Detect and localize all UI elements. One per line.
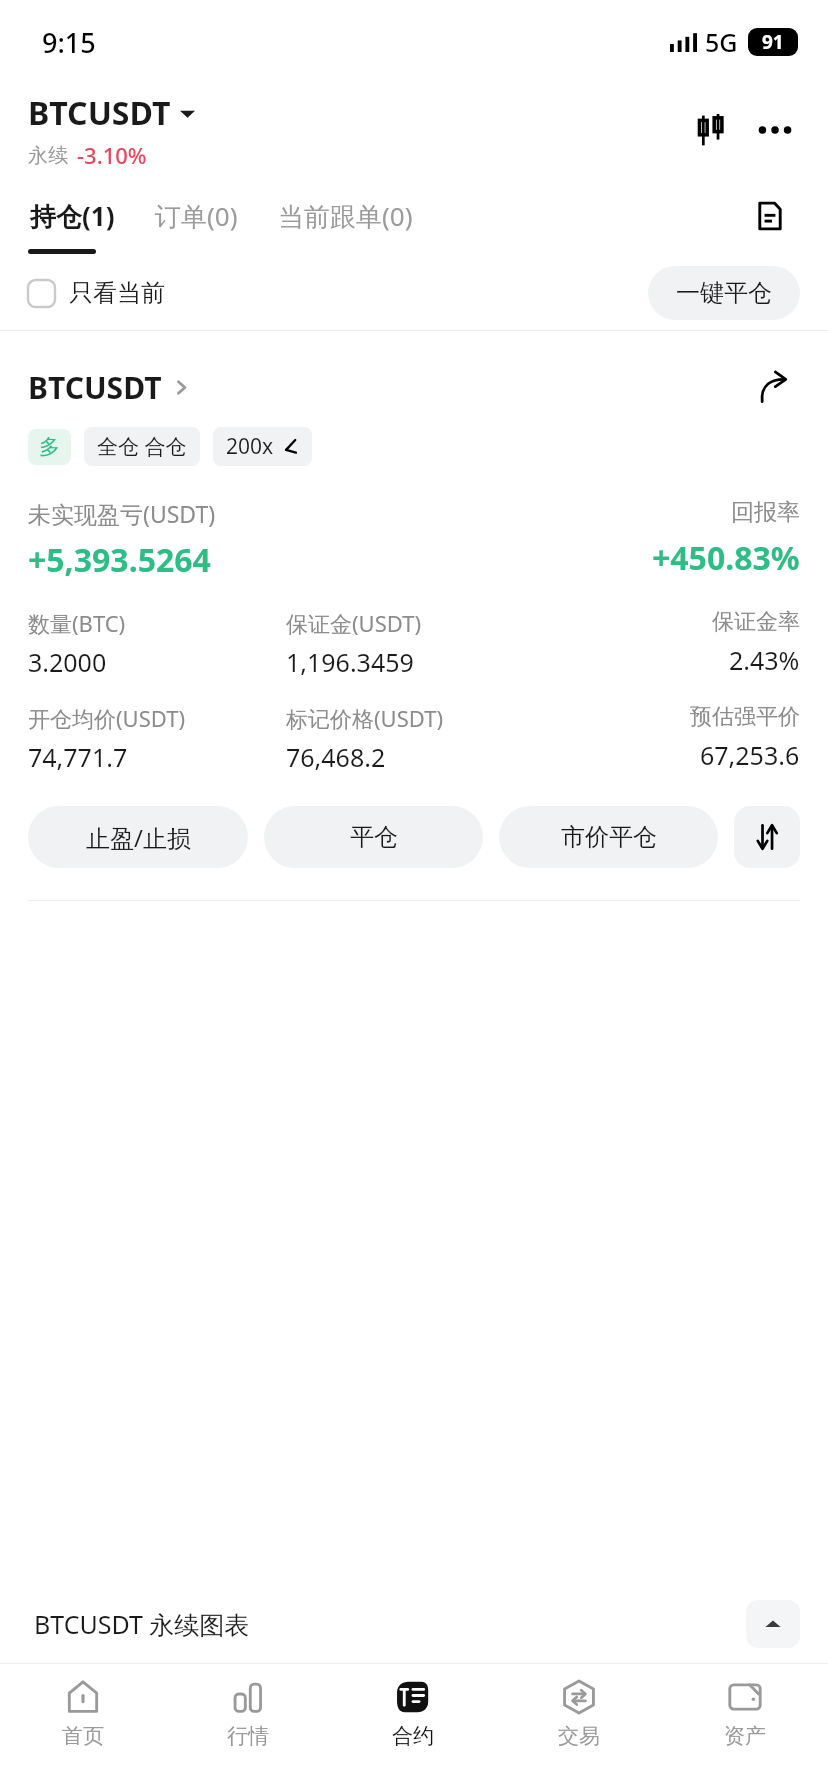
button[interactable]: More options xyxy=(746,101,804,159)
staticText: 预估强平价 xyxy=(690,703,800,731)
button[interactable]: 订单(0) xyxy=(153,190,240,242)
button[interactable]: 一键平仓 xyxy=(648,266,800,320)
staticText: 91 xyxy=(762,29,784,55)
button[interactable]: Reverse position xyxy=(734,806,800,868)
staticText: 回报率 xyxy=(731,498,800,527)
button[interactable]: 止盈/止损 xyxy=(28,806,248,868)
staticText: BTCUSDT xyxy=(28,367,162,408)
button[interactable]: 市价平仓 xyxy=(499,806,718,868)
staticText: 市价平仓 xyxy=(561,822,657,852)
staticText: +450.83% xyxy=(652,536,800,580)
button[interactable]: 只看当前 xyxy=(28,270,165,316)
staticText: 9:15 xyxy=(42,24,96,61)
button[interactable]: Share position xyxy=(748,361,800,413)
staticText: 资产 xyxy=(724,1723,766,1749)
staticText: 首页 xyxy=(62,1723,104,1749)
staticText: BTCUSDT xyxy=(28,91,171,135)
staticText: 未实现盈亏(USDT) xyxy=(28,498,216,529)
staticText: 合约 xyxy=(392,1723,434,1749)
button[interactable]: BTCUSDT xyxy=(28,91,195,135)
staticText: 订单(0) xyxy=(155,198,238,234)
button[interactable]: Chart view xyxy=(682,101,740,159)
staticText: 76,468.2 xyxy=(286,740,386,774)
button[interactable]: 持仓(1) xyxy=(28,190,117,242)
staticText: 数量(BTC) xyxy=(28,608,126,638)
staticText: 200x xyxy=(226,432,274,461)
staticText: 5G xyxy=(705,25,738,59)
staticText: 一键平仓 xyxy=(676,278,772,308)
button[interactable]: Expand chart xyxy=(746,1600,800,1648)
staticText: 67,253.6 xyxy=(700,738,800,772)
staticText: 当前跟单(0) xyxy=(278,198,413,234)
button[interactable]: BTCUSDT 永续图表 xyxy=(0,1585,828,1663)
staticText: 全仓 合仓 xyxy=(97,432,187,461)
staticText: 交易 xyxy=(558,1723,600,1749)
staticText: 只看当前 xyxy=(69,278,165,308)
button[interactable]: Order records xyxy=(742,188,798,244)
staticText: 持仓(1) xyxy=(30,198,115,234)
staticText: 永续 xyxy=(28,143,68,168)
staticText: 1,196.3459 xyxy=(286,645,414,679)
button[interactable]: 全仓 合仓 xyxy=(84,427,200,466)
staticText: 2.43% xyxy=(729,643,800,677)
button[interactable]: BTCUSDT xyxy=(28,367,190,408)
staticText: 止盈/止损 xyxy=(86,821,191,854)
button[interactable]: 合约 xyxy=(330,1664,496,1792)
staticText: BTCUSDT 永续图表 xyxy=(34,1607,250,1641)
button[interactable]: 交易 xyxy=(496,1664,662,1792)
staticText: 保证金率 xyxy=(712,608,800,636)
button[interactable]: 行情 xyxy=(165,1664,330,1792)
button[interactable]: 资产 xyxy=(662,1664,828,1792)
staticText: 平仓 xyxy=(350,822,398,852)
staticText: -3.10% xyxy=(77,140,147,170)
staticText: 74,771.7 xyxy=(28,740,128,774)
button[interactable]: 200x xyxy=(213,427,312,466)
staticText: +5,393.5264 xyxy=(28,538,211,582)
staticText: 标记价格(USDT) xyxy=(286,703,443,733)
staticText: 行情 xyxy=(227,1723,269,1749)
button[interactable]: 平仓 xyxy=(264,806,483,868)
staticText: 开仓均价(USDT) xyxy=(28,703,185,733)
staticText: 保证金(USDT) xyxy=(286,608,421,638)
staticText: 多 xyxy=(39,434,60,460)
button[interactable]: 当前跟单(0) xyxy=(276,190,415,242)
staticText: 3.2000 xyxy=(28,645,107,679)
button[interactable]: 首页 xyxy=(0,1664,165,1792)
